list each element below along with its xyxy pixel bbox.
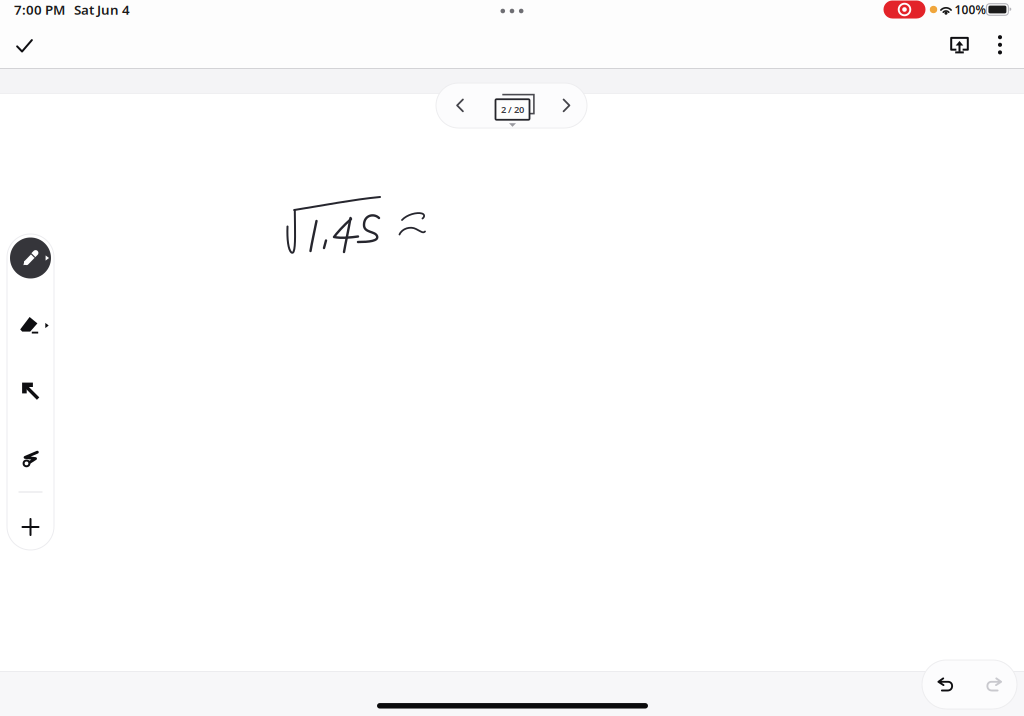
staticText: 2 / 20 bbox=[501, 103, 524, 116]
button[interactable]: Previous page bbox=[440, 83, 480, 128]
staticText: Sat Jun 4 bbox=[74, 1, 130, 18]
button[interactable]: Present bbox=[937, 22, 981, 68]
button[interactable]: Pen tool bbox=[7, 234, 54, 282]
button[interactable]: Laser pointer bbox=[7, 435, 54, 483]
staticText: 7:00 PM bbox=[14, 1, 65, 18]
staticText: 100% bbox=[954, 1, 986, 17]
button[interactable]: Undo bbox=[922, 660, 969, 709]
button[interactable]: Eraser tool bbox=[7, 301, 54, 349]
button[interactable]: More options bbox=[980, 22, 1020, 68]
button[interactable]: Page 2 of 20 — show page thumbnails bbox=[495, 93, 539, 131]
button[interactable]: Add tool bbox=[7, 503, 54, 551]
button[interactable]: Next page bbox=[546, 83, 586, 128]
button[interactable]: Done bbox=[1, 23, 47, 69]
button[interactable]: Redo bbox=[970, 660, 1017, 709]
button[interactable]: Select tool bbox=[7, 367, 54, 415]
